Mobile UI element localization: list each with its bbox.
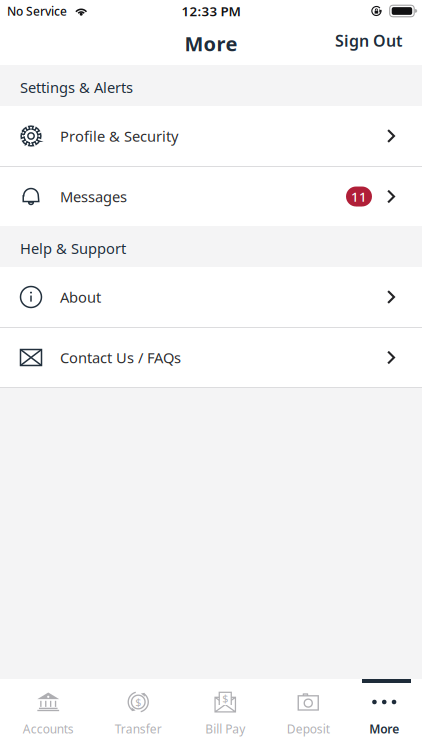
staticText: No Service	[7, 3, 67, 19]
staticText: Messages	[60, 187, 127, 206]
staticText: More	[184, 30, 237, 57]
button[interactable]: Profile & Security	[0, 106, 422, 166]
button[interactable]: More	[354, 679, 414, 750]
staticText: Profile & Security	[60, 126, 178, 146]
staticText: 11	[351, 188, 367, 205]
staticText: 12:33 PM	[181, 2, 240, 20]
staticText: Sign Out	[335, 30, 402, 51]
staticText: $	[222, 691, 228, 705]
staticText: Settings & Alerts	[20, 77, 133, 97]
staticText: Contact Us / FAQs	[60, 348, 181, 367]
staticText: Transfer	[115, 721, 162, 737]
staticText: $	[135, 695, 141, 709]
button[interactable]: $	[195, 679, 255, 750]
staticText: Deposit	[287, 721, 330, 737]
staticText: About	[60, 287, 101, 307]
button[interactable]: Accounts	[18, 679, 78, 750]
staticText: Accounts	[23, 721, 74, 737]
button[interactable]: Sign Out	[331, 24, 406, 57]
staticText: Help & Support	[20, 238, 126, 258]
button[interactable]: Messages	[0, 167, 422, 226]
button[interactable]: Deposit	[278, 679, 338, 750]
button[interactable]: Contact Us / FAQs	[0, 328, 422, 387]
staticText: More	[369, 721, 399, 737]
button[interactable]: About	[0, 267, 422, 327]
staticText: Bill Pay	[205, 721, 245, 737]
button[interactable]: $	[108, 679, 168, 750]
